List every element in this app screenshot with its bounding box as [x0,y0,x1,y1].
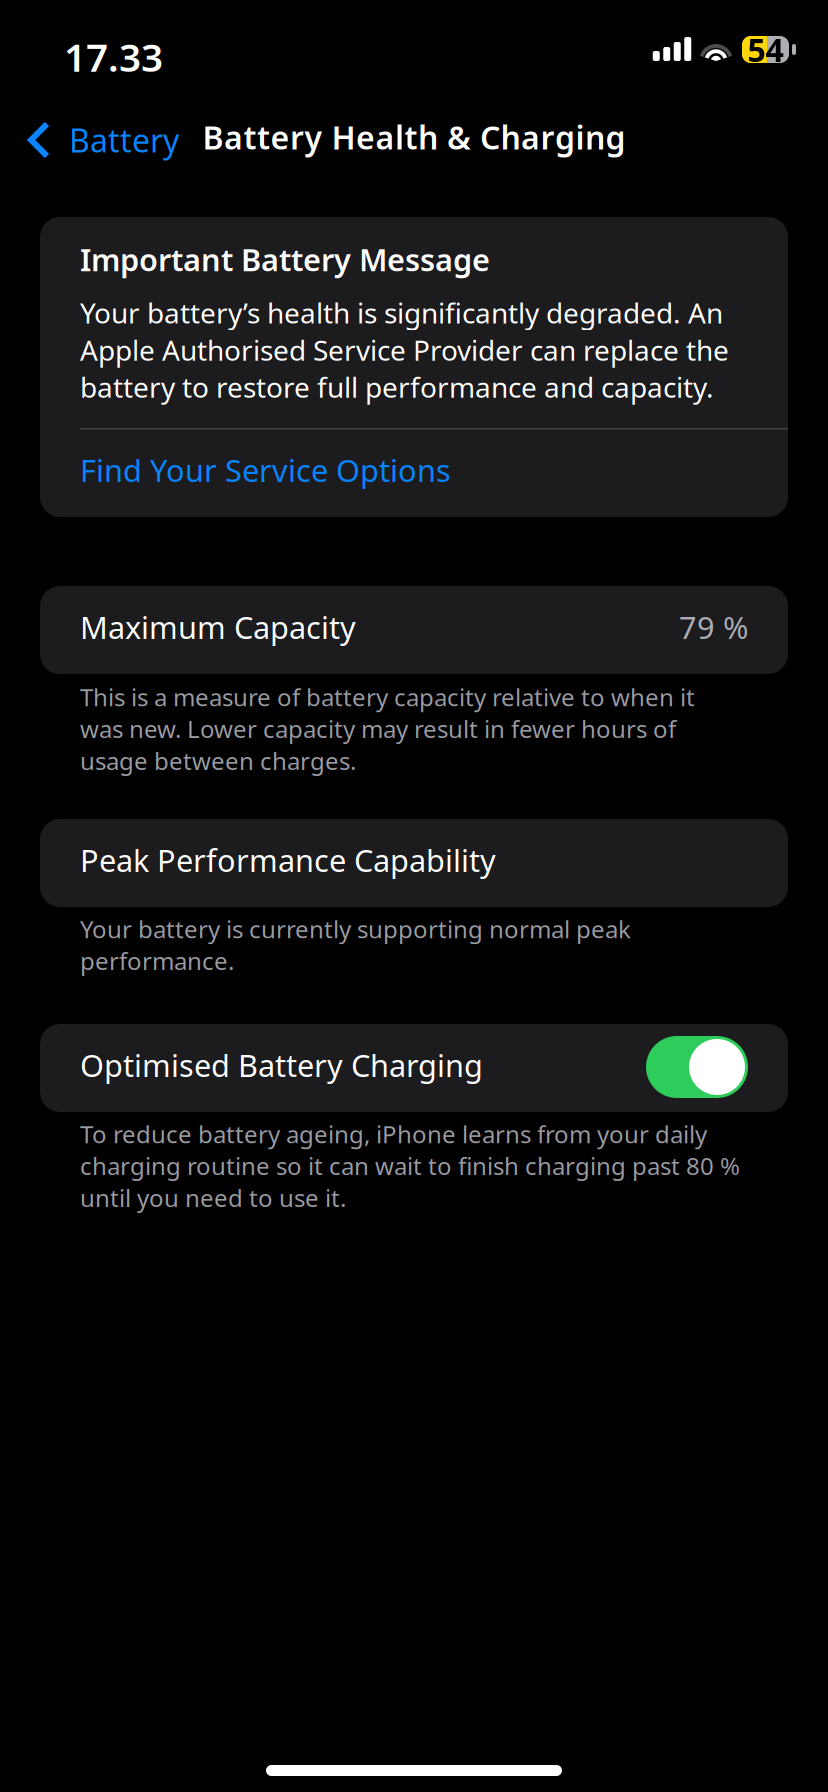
staticText: Battery [69,119,179,161]
staticText: Your battery’s health is significantly d… [80,294,729,405]
staticText: Battery Health & Charging [202,116,625,158]
staticText: Maximum Capacity [80,607,356,647]
staticText: 17.33 [64,31,163,82]
staticText: Find Your Service Options [80,450,451,490]
staticText: Important Battery Message [80,239,490,280]
staticText: This is a measure of battery capacity re… [80,681,695,777]
button[interactable]: Battery [0,98,195,182]
staticText: 79 % [679,607,748,647]
button[interactable]: Optimised Battery Charging [646,1036,748,1098]
staticText: Your battery is currently supporting nor… [80,913,631,977]
button[interactable]: Peak Performance Capability [40,819,788,907]
staticText: Optimised Battery Charging [80,1045,483,1085]
staticText: Peak Performance Capability [80,840,496,880]
staticText: To reduce battery ageing, iPhone learns … [80,1118,740,1214]
staticText: 54 [747,28,783,71]
button[interactable]: Find Your Service Options [40,426,788,514]
